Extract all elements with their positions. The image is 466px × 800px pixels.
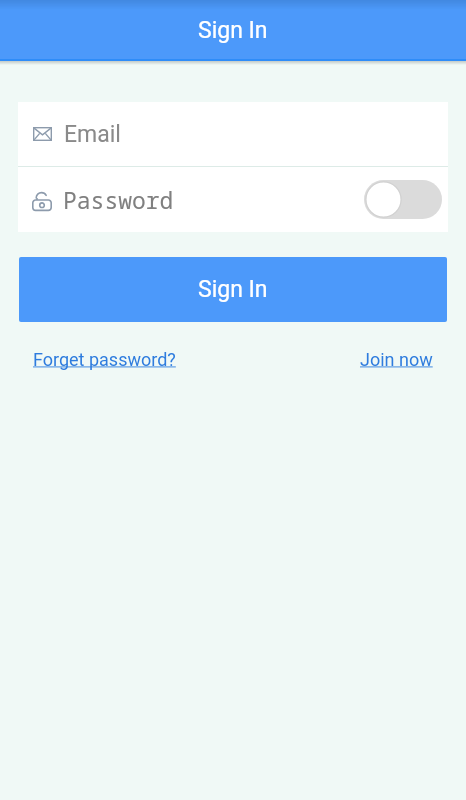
button[interactable] (364, 180, 442, 219)
staticText: Password (63, 184, 174, 215)
button[interactable]: Forget password? (33, 349, 176, 370)
button[interactable]: Email (18, 102, 448, 166)
staticText: Email (64, 121, 121, 148)
button[interactable]: Sign In (19, 257, 447, 322)
staticText: Sign In (198, 17, 268, 44)
staticText: Sign In (198, 276, 268, 303)
button[interactable]: Password (18, 167, 448, 232)
button[interactable]: Join now (360, 349, 433, 370)
